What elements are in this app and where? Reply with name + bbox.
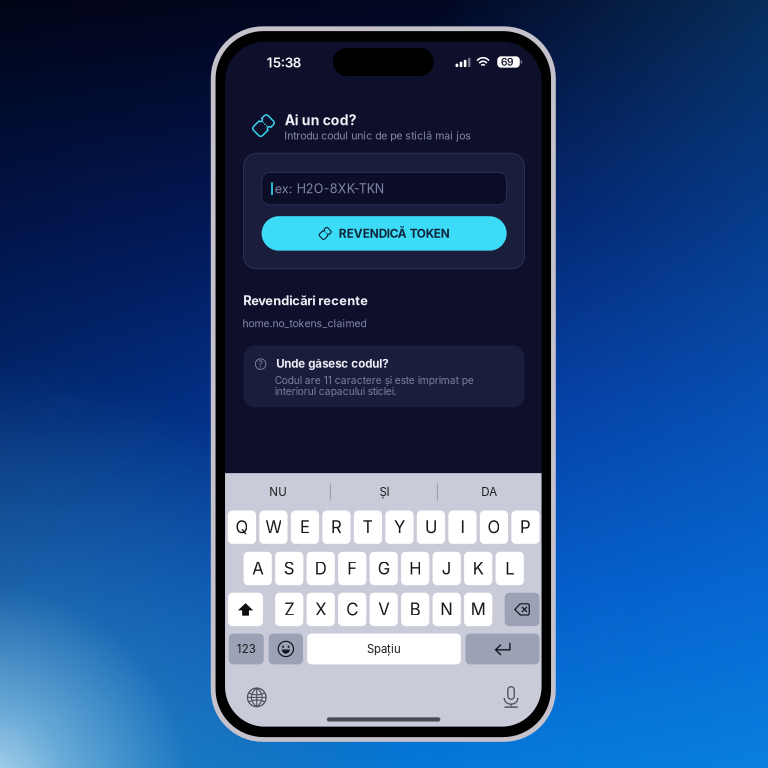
staticText: S (284, 558, 295, 579)
staticText: Ai un cod? (285, 112, 357, 128)
button[interactable]: F (338, 552, 366, 585)
staticText: ? (258, 358, 263, 369)
staticText: D (315, 558, 327, 579)
staticText: M (471, 599, 486, 619)
button[interactable]: 123 (229, 633, 264, 664)
button[interactable]: V (370, 593, 398, 626)
staticText: G (378, 558, 390, 579)
button[interactable]: X (307, 593, 335, 626)
staticText: Q (235, 517, 248, 537)
button[interactable]: R (322, 510, 351, 544)
staticText: B (410, 599, 421, 619)
button[interactable]: M (464, 593, 492, 626)
staticText: C (346, 599, 358, 619)
staticText: I (460, 517, 464, 537)
staticText: Y (394, 517, 405, 537)
button[interactable]: K (464, 552, 492, 585)
staticText: O (487, 517, 500, 537)
staticText: F (347, 558, 357, 579)
button[interactable]: ȘI (334, 473, 434, 510)
button[interactable]: A (244, 552, 272, 585)
staticText: DA (481, 485, 497, 499)
button[interactable]: REVENDICĂ TOKEN (262, 216, 507, 251)
staticText: REVENDICĂ TOKEN (339, 226, 450, 241)
button[interactable]: Spațiu (307, 633, 461, 664)
button[interactable]: C (338, 593, 366, 626)
button[interactable]: NU (228, 473, 328, 510)
button[interactable]: Backspace (505, 593, 539, 626)
button[interactable]: U (417, 510, 445, 544)
button[interactable]: O (480, 510, 508, 544)
button[interactable]: Change keyboard (245, 685, 269, 709)
button[interactable]: Dictate (499, 685, 523, 709)
button[interactable]: P (511, 510, 540, 544)
button[interactable]: Q (228, 510, 256, 544)
staticText: interiorul capacului sticlei. (275, 385, 397, 397)
button[interactable]: Emoji (269, 633, 303, 664)
staticText: X (315, 599, 326, 619)
staticText: L (505, 558, 514, 579)
staticText: Z (284, 599, 294, 619)
staticText: Revendicări recente (243, 293, 368, 308)
button[interactable]: DA (439, 473, 539, 510)
button[interactable]: B (401, 593, 429, 626)
staticText: ex: H2O-8XK-TKN (275, 181, 384, 196)
button[interactable]: N (433, 593, 461, 626)
button[interactable]: G (370, 552, 398, 585)
staticText: Introdu codul unic de pe sticlă mai jos (284, 129, 471, 142)
staticText: A (252, 558, 263, 579)
button[interactable]: S (275, 552, 303, 585)
staticText: ȘI (379, 485, 389, 499)
staticText: N (440, 599, 453, 619)
staticText: Spațiu (367, 642, 401, 656)
button[interactable]: W (259, 510, 288, 544)
staticText: Codul are 11 caractere și este imprimat … (275, 374, 474, 387)
button[interactable]: T (354, 510, 382, 544)
staticText: K (473, 558, 484, 579)
button[interactable]: J (433, 552, 461, 585)
button[interactable]: Y (385, 510, 414, 544)
button[interactable]: Return (465, 633, 539, 664)
button[interactable]: I (448, 510, 477, 544)
staticText: Unde găsesc codul? (276, 357, 388, 370)
staticText: NU (269, 485, 287, 499)
staticText: 69 (501, 56, 513, 68)
staticText: H (409, 558, 421, 579)
staticText: U (425, 517, 437, 537)
button[interactable]: H (401, 552, 429, 585)
staticText: V (378, 599, 389, 619)
staticText: T (362, 517, 373, 537)
button[interactable]: E (291, 510, 319, 544)
staticText: 123 (237, 642, 256, 656)
staticText: R (331, 517, 342, 537)
staticText: W (265, 517, 281, 537)
button[interactable]: L (496, 552, 524, 585)
button[interactable]: Z (275, 593, 303, 626)
staticText: E (300, 517, 310, 537)
staticText: 15:38 (267, 54, 302, 71)
staticText: J (442, 558, 452, 579)
staticText: P (520, 517, 531, 537)
button[interactable]: D (307, 552, 335, 585)
staticText: home.no_tokens_claimed (242, 317, 366, 330)
button[interactable]: Shift (228, 593, 263, 626)
